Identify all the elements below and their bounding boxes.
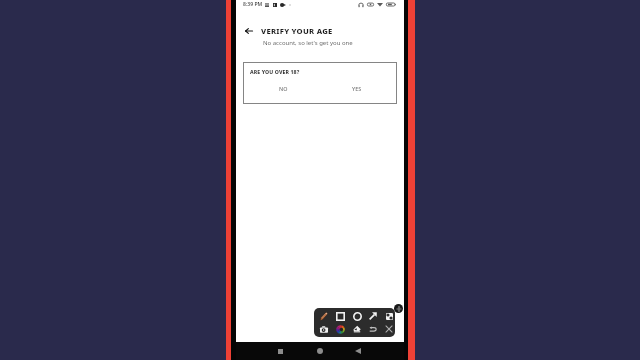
button[interactable]: Move toolbar <box>394 304 403 313</box>
staticText: No account, so let's get you one <box>263 39 353 47</box>
button[interactable]: Circle <box>351 310 363 322</box>
staticText: NO <box>279 85 288 92</box>
button[interactable]: Rectangle <box>334 310 346 322</box>
button[interactable]: Mosaic <box>383 310 395 322</box>
button[interactable]: Recent apps <box>272 343 288 359</box>
button[interactable]: Screenshot <box>318 323 330 335</box>
staticText: VERIFY YOUR AGE <box>261 26 333 36</box>
button[interactable]: Arrow <box>367 310 379 322</box>
button[interactable]: Close <box>383 323 395 335</box>
button[interactable]: Pen <box>318 310 330 322</box>
button[interactable]: Back <box>241 23 256 38</box>
staticText: ARE YOU OVER 18? <box>250 68 300 75</box>
button[interactable]: Color <box>334 323 346 335</box>
button[interactable]: NO <box>246 82 320 94</box>
button[interactable]: Home <box>312 343 328 359</box>
staticText: YES <box>352 85 362 92</box>
button[interactable]: Eraser <box>351 323 363 335</box>
button[interactable]: Undo <box>367 323 379 335</box>
button[interactable]: YES <box>320 82 394 94</box>
button[interactable]: Back <box>350 343 366 359</box>
button[interactable]: ARE YOU OVER 18? <box>243 62 397 104</box>
staticText: 8:39 PM <box>243 1 263 8</box>
